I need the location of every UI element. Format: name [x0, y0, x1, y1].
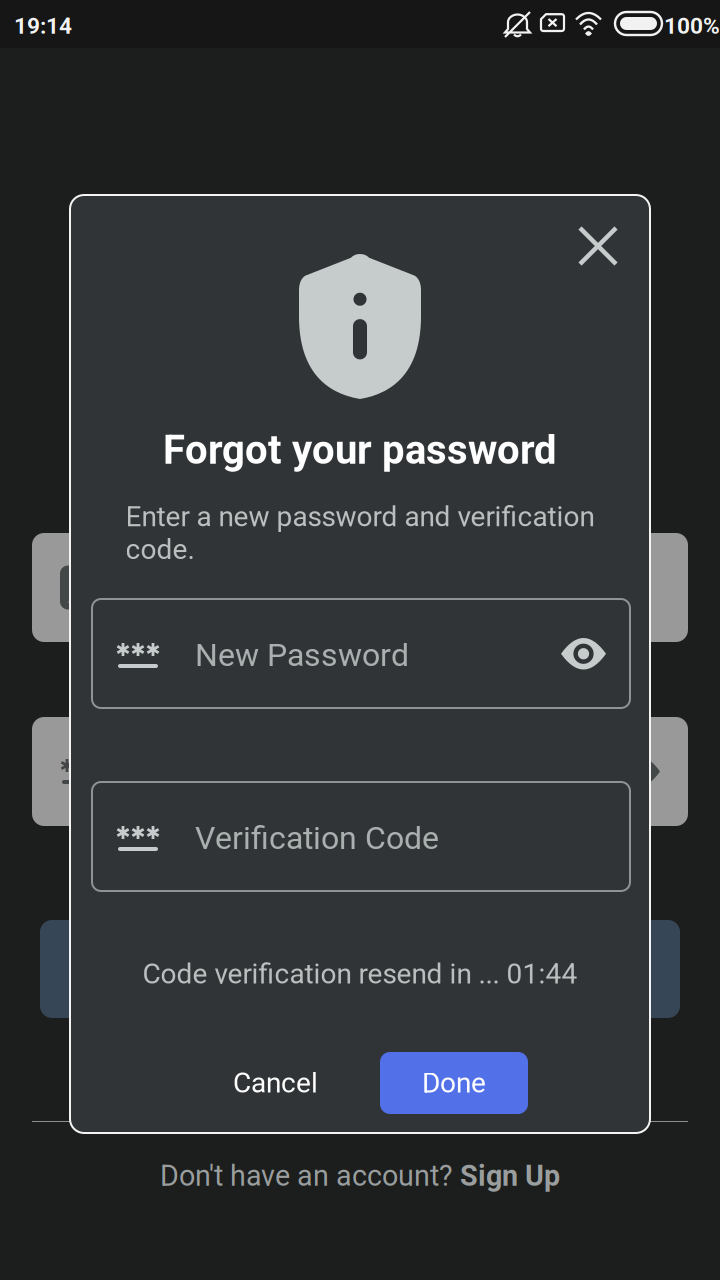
staticText: Don't have an account? — [160, 1159, 460, 1193]
button[interactable]: Close — [566, 214, 630, 278]
button[interactable]: Cancel — [213, 1052, 338, 1114]
button[interactable]: New Password — [92, 599, 630, 708]
button[interactable]: Don't have an account? — [0, 1148, 720, 1204]
staticText: 100% — [664, 13, 720, 39]
staticText: 19:14 — [14, 13, 72, 39]
staticText: Sign Up — [460, 1159, 560, 1193]
button[interactable]: Verification Code — [92, 782, 630, 891]
button[interactable]: Done — [380, 1052, 528, 1114]
staticText: Enter a new password and verification co… — [125, 500, 594, 566]
staticText: Done — [422, 1067, 486, 1099]
staticText: New Password — [195, 636, 409, 674]
staticText: Forgot your password — [163, 427, 557, 473]
staticText: Verification Code — [195, 819, 439, 857]
staticText: Cancel — [233, 1067, 318, 1099]
staticText: Code verification resend in ... 01:44 — [142, 958, 577, 990]
